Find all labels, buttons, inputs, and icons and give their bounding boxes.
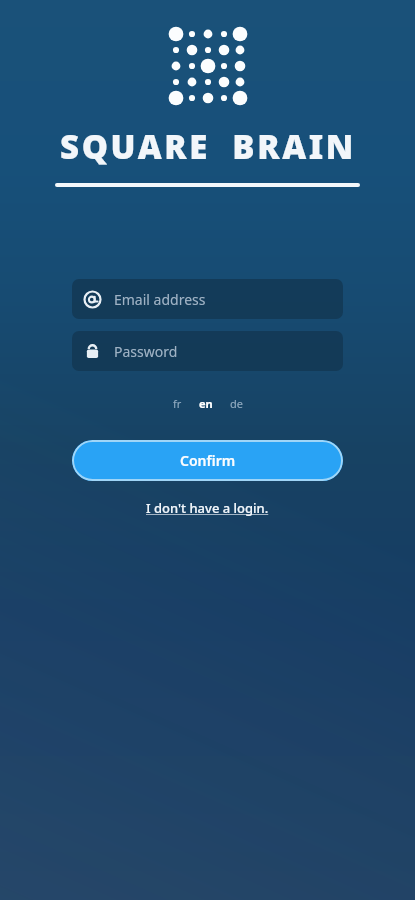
button[interactable]: Password [72, 331, 343, 371]
staticText: Password [114, 342, 178, 361]
button[interactable]: fr [170, 394, 185, 413]
button[interactable]: en [196, 394, 216, 413]
staticText: I don't have a login. [146, 499, 269, 517]
button[interactable]: de [227, 394, 246, 413]
button[interactable]: Email address [72, 279, 343, 319]
staticText: SQUARE BRAIN [60, 124, 356, 169]
staticText: en [199, 396, 213, 411]
button[interactable]: I don't have a login. [140, 496, 275, 520]
staticText: Email address [114, 290, 206, 309]
button[interactable]: Confirm [72, 440, 343, 481]
staticText: fr [173, 396, 182, 411]
staticText: Confirm [180, 451, 236, 470]
staticText: de [230, 396, 243, 411]
